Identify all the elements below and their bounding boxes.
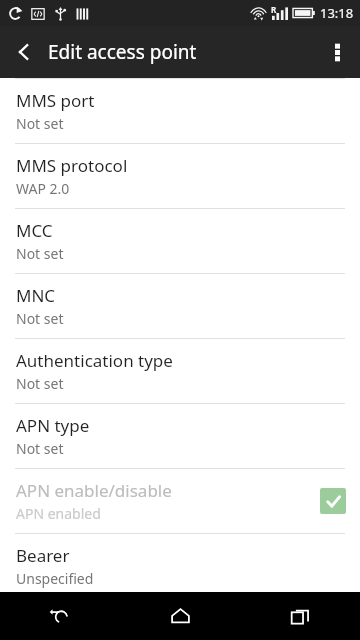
staticText: MCC	[16, 219, 53, 242]
staticText: Not set	[16, 114, 64, 133]
button[interactable]: MNC	[0, 274, 360, 338]
button[interactable]: APN enable/disable	[0, 469, 360, 533]
button[interactable]: APN enabled checkbox	[320, 488, 346, 514]
staticText: Not set	[16, 439, 64, 458]
button[interactable]: MCC	[0, 209, 360, 273]
staticText: Not set	[16, 244, 64, 263]
staticText: Not set	[16, 374, 64, 393]
button[interactable]: More options	[314, 26, 360, 78]
staticText: APN enabled	[16, 504, 101, 523]
staticText: R	[271, 4, 277, 15]
button[interactable]: APN type	[0, 404, 360, 468]
staticText: MNC	[16, 284, 56, 307]
button[interactable]: Back	[0, 592, 120, 640]
button[interactable]: Back	[0, 26, 48, 78]
staticText: APN type	[16, 414, 90, 437]
staticText: 13:18	[320, 4, 354, 22]
staticText: Unspecified	[16, 569, 94, 588]
button[interactable]: Bearer	[0, 534, 360, 598]
staticText: Edit access point	[48, 39, 197, 65]
button[interactable]: MMS protocol	[0, 144, 360, 208]
button[interactable]: MMS port	[0, 79, 360, 143]
staticText: MMS protocol	[16, 154, 128, 177]
button[interactable]: Authentication type	[0, 339, 360, 403]
staticText: Not set	[16, 309, 64, 328]
staticText: APN enable/disable	[16, 479, 172, 502]
button[interactable]: Recent apps	[240, 592, 360, 640]
staticText: MMS port	[16, 89, 95, 112]
button[interactable]: Home	[120, 592, 240, 640]
staticText: WAP 2.0	[16, 179, 70, 198]
staticText: Authentication type	[16, 349, 173, 372]
staticText: Bearer	[16, 544, 70, 567]
